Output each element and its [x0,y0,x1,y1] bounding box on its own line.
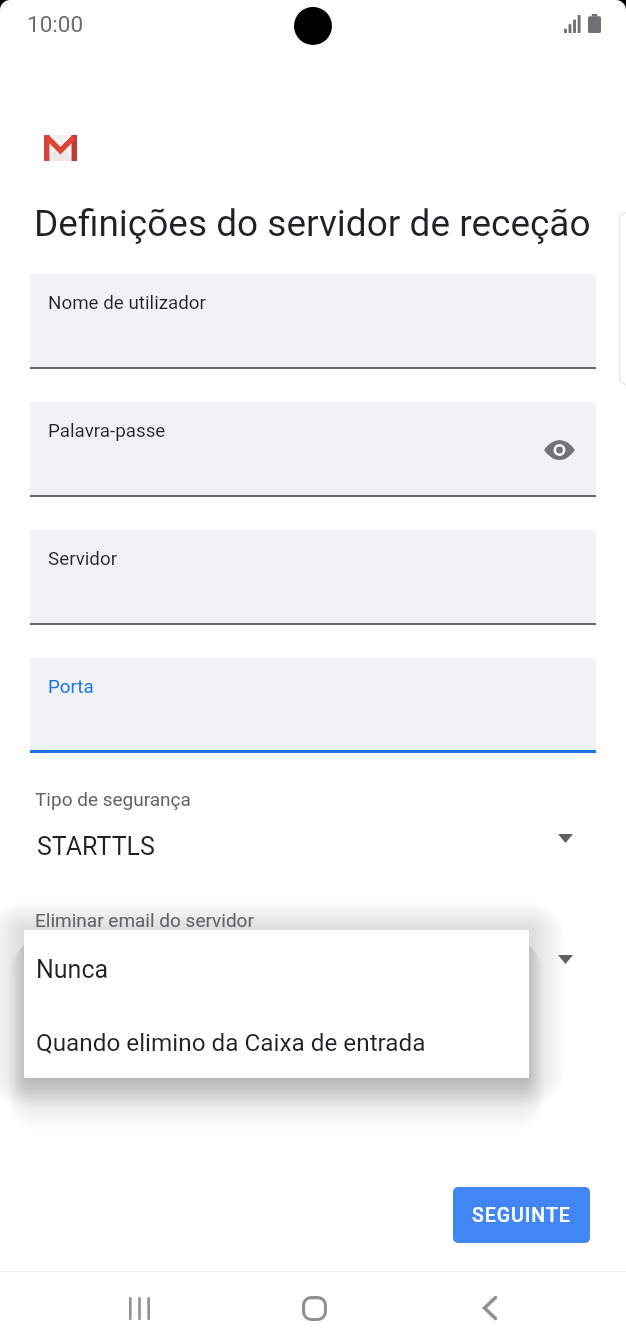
staticText: Servidor [48,548,118,570]
button[interactable]: Servidor [30,530,596,625]
staticText: Definições do servidor de receção [34,202,591,245]
button[interactable]: Início [274,1268,354,1344]
button[interactable]: Porta [30,658,596,753]
button[interactable]: Voltar [450,1268,530,1344]
staticText: Tipo de segurança [35,788,191,810]
staticText: Nunca [36,955,109,984]
button[interactable]: Eliminar email do servidor [0,911,626,1006]
button[interactable]: Nunca [24,930,529,1004]
button[interactable]: Palavra-passe [30,402,596,497]
button[interactable]: Nome de utilizador [30,274,596,369]
button[interactable]: Recentes [99,1268,179,1344]
staticText: 10:00 [27,11,84,37]
staticText: Palavra-passe [48,420,166,442]
staticText: SEGUINTE [472,1204,571,1227]
button[interactable]: SEGUINTE [453,1187,590,1243]
staticText: Eliminar email do servidor [35,909,254,931]
staticText: Quando elimino da Caixa de entrada [36,1028,426,1056]
button[interactable]: Quando elimino da Caixa de entrada [24,1004,529,1078]
button[interactable]: Tipo de segurança [0,790,626,885]
button[interactable]: Mostrar palavra-passe [537,428,581,472]
staticText: Nome de utilizador [48,292,206,314]
staticText: Porta [48,676,94,698]
staticText: STARTTLS [37,832,155,861]
staticText: Nunca [37,953,110,982]
